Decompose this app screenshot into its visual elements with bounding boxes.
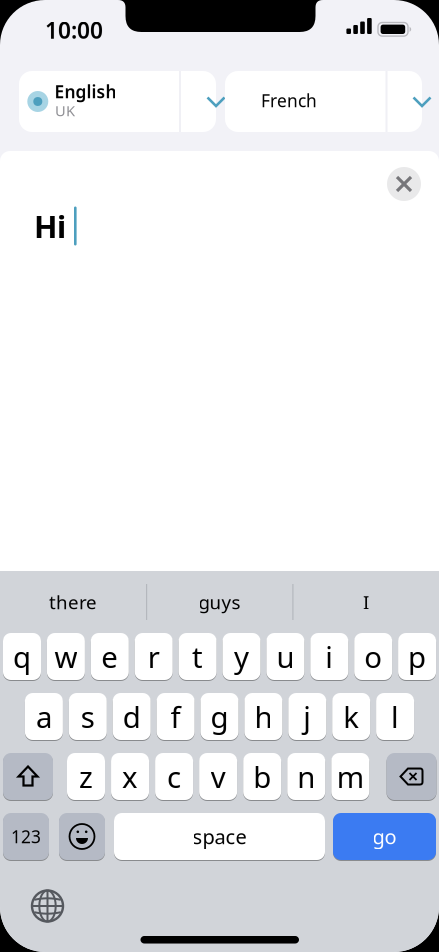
staticText: 123	[11, 825, 41, 848]
button[interactable]: English	[19, 71, 216, 132]
staticText: p	[408, 637, 426, 676]
staticText: n	[297, 757, 315, 796]
button[interactable]: Delete	[386, 753, 436, 800]
button[interactable]: u	[266, 633, 304, 680]
staticText: w	[54, 637, 77, 676]
staticText: j	[303, 697, 311, 736]
staticText: there	[49, 590, 97, 614]
button[interactable]: g	[200, 693, 238, 740]
staticText: guys	[198, 590, 240, 614]
button[interactable]: c	[155, 753, 193, 800]
staticText: I	[363, 590, 369, 614]
button[interactable]: go	[333, 813, 436, 860]
button[interactable]: y	[222, 633, 260, 680]
staticText: z	[79, 757, 93, 796]
staticText: Hi	[34, 206, 66, 246]
button[interactable]: n	[287, 753, 325, 800]
button[interactable]: French	[225, 71, 422, 132]
button[interactable]: f	[157, 693, 195, 740]
staticText: m	[337, 757, 364, 796]
staticText: s	[81, 697, 95, 736]
button[interactable]: e	[91, 633, 129, 680]
staticText: t	[192, 637, 203, 676]
button[interactable]: there	[3, 579, 143, 625]
button[interactable]: p	[398, 633, 436, 680]
staticText: f	[171, 697, 181, 736]
button[interactable]: b	[243, 753, 281, 800]
button[interactable]: t	[179, 633, 217, 680]
button[interactable]: Next keyboard	[25, 884, 69, 928]
staticText: e	[101, 637, 118, 676]
staticText: x	[122, 757, 138, 796]
button[interactable]: x	[111, 753, 149, 800]
button[interactable]: I	[296, 579, 436, 625]
button[interactable]: q	[3, 633, 41, 680]
staticText: c	[167, 757, 181, 796]
staticText: 10:00	[45, 15, 103, 45]
button[interactable]: a	[25, 693, 63, 740]
button[interactable]: o	[354, 633, 392, 680]
staticText: g	[210, 697, 228, 736]
staticText: d	[123, 697, 141, 736]
button[interactable]: w	[47, 633, 85, 680]
button[interactable]: j	[288, 693, 326, 740]
staticText: space	[192, 823, 246, 850]
staticText: h	[254, 697, 272, 736]
staticText: r	[148, 637, 160, 676]
staticText: a	[36, 697, 52, 736]
button[interactable]: Emoji	[59, 813, 105, 860]
staticText: l	[391, 697, 399, 736]
button[interactable]: h	[244, 693, 282, 740]
staticText: b	[253, 757, 271, 796]
staticText: French	[261, 89, 317, 112]
staticText: k	[343, 697, 359, 736]
button[interactable]: r	[135, 633, 173, 680]
button[interactable]: Close	[387, 167, 421, 201]
button[interactable]: k	[332, 693, 370, 740]
button[interactable]: Shift	[3, 753, 53, 800]
button[interactable]: 123	[3, 813, 49, 860]
staticText: u	[276, 637, 294, 676]
button[interactable]: d	[113, 693, 151, 740]
staticText: v	[211, 757, 226, 796]
button[interactable]: i	[310, 633, 348, 680]
staticText: UK	[55, 101, 75, 120]
staticText: i	[325, 637, 333, 676]
button[interactable]: s	[69, 693, 107, 740]
button[interactable]: space	[114, 813, 325, 860]
staticText: q	[13, 637, 31, 676]
button[interactable]: guys	[149, 579, 289, 625]
button[interactable]: m	[331, 753, 369, 800]
button[interactable]: v	[199, 753, 237, 800]
staticText: English	[54, 80, 116, 103]
staticText: o	[364, 637, 382, 676]
staticText: y	[234, 637, 249, 676]
button[interactable]: l	[376, 693, 414, 740]
button[interactable]: z	[67, 753, 105, 800]
staticText: go	[372, 823, 396, 850]
